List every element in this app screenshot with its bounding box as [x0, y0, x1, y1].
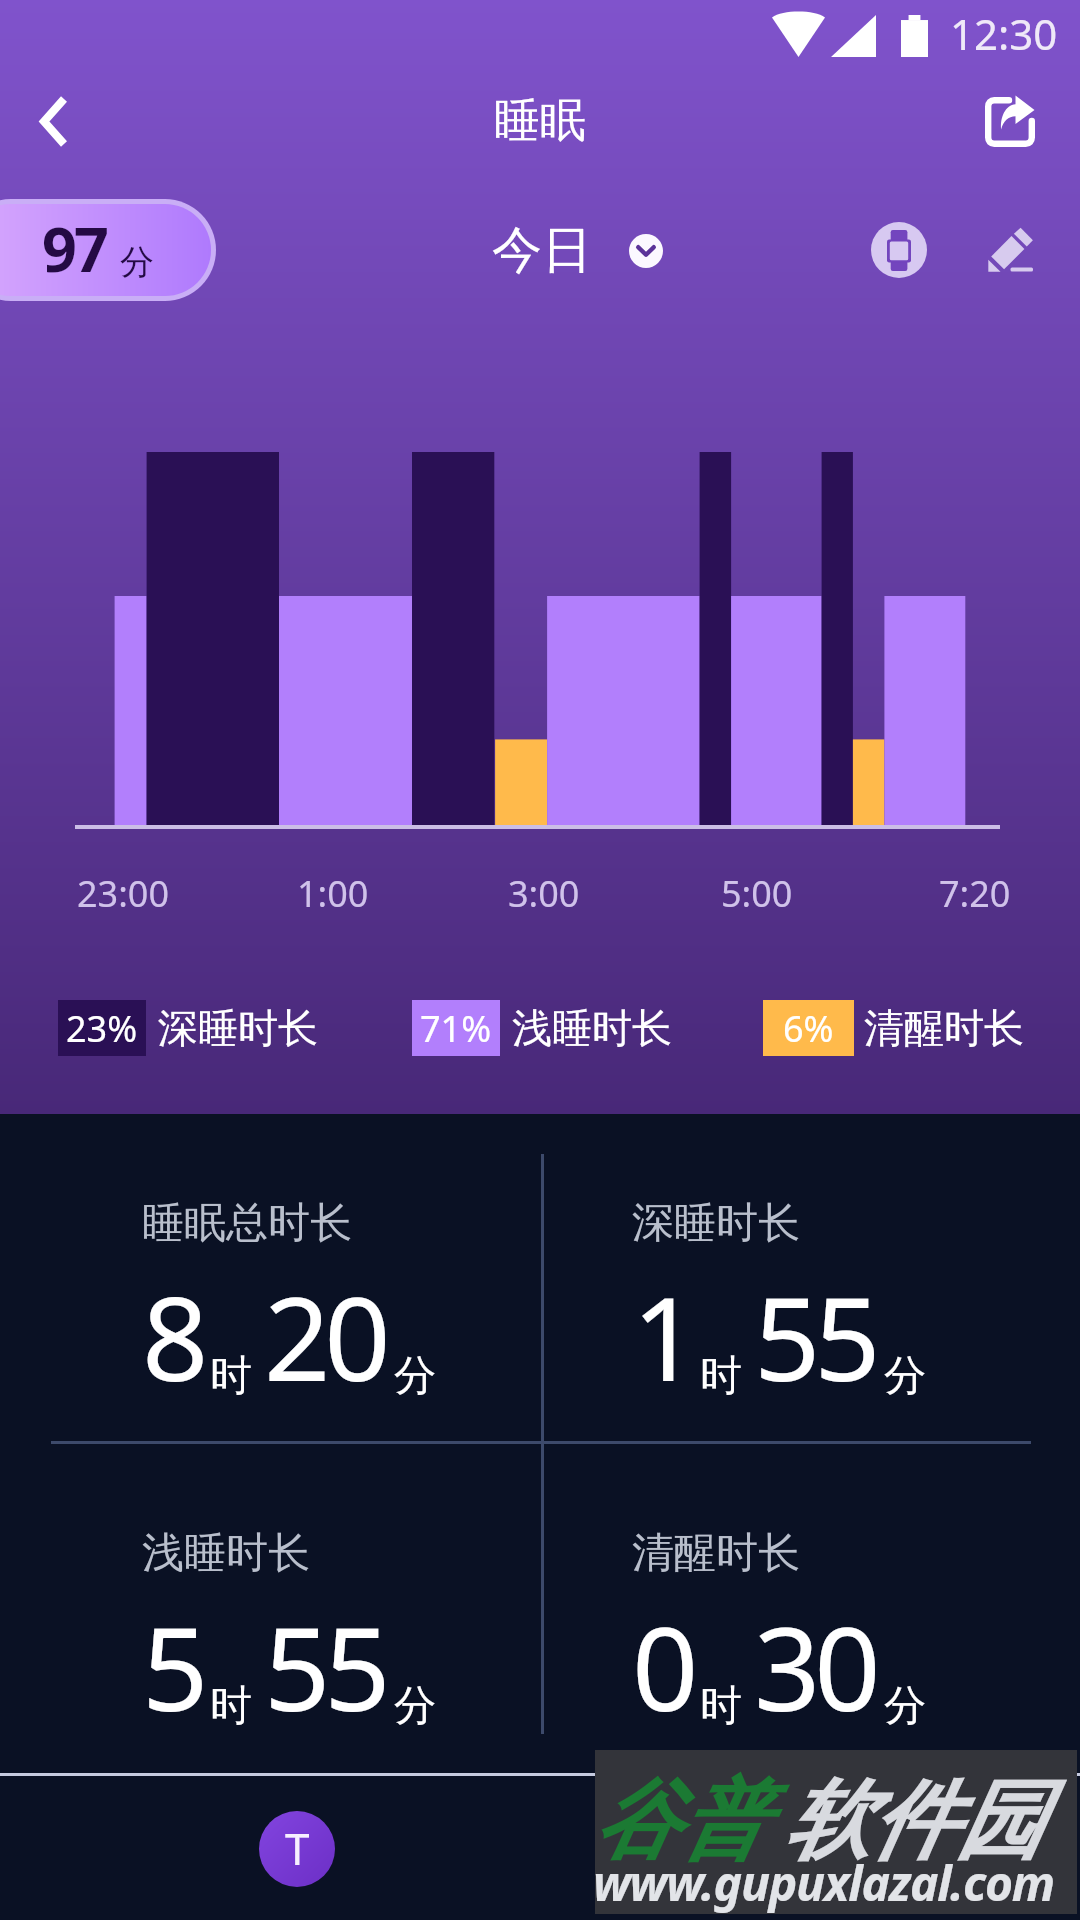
- staticText: 1: [632, 1257, 699, 1415]
- staticText: 软件园: [784, 1767, 1042, 1875]
- button[interactable]: 深睡时长: [632, 1196, 1032, 1486]
- staticText: 23:00: [77, 869, 170, 918]
- staticText: 时: [210, 1680, 252, 1733]
- button[interactable]: 睡眠总时长: [142, 1196, 542, 1486]
- staticText: 71%: [420, 1004, 492, 1053]
- staticText: 浅睡时长: [512, 1003, 672, 1053]
- staticText: www.gupuxlazal.com: [593, 1850, 1055, 1915]
- staticText: 55: [754, 1257, 875, 1415]
- staticText: 8: [142, 1257, 209, 1415]
- staticText: 3:00: [508, 869, 580, 918]
- staticText: 分: [394, 1350, 436, 1403]
- staticText: 55: [264, 1587, 385, 1745]
- staticText: 时: [700, 1350, 742, 1403]
- staticText: 5: [142, 1587, 209, 1745]
- staticText: 深睡时长: [158, 1003, 318, 1053]
- button[interactable]: Edit: [961, 210, 1041, 290]
- staticText: 30: [754, 1587, 875, 1745]
- button[interactable]: Watch: [859, 210, 939, 290]
- staticText: 清醒时长: [864, 1003, 1024, 1053]
- staticText: 深睡时长: [632, 1197, 800, 1250]
- staticText: 分: [394, 1680, 436, 1733]
- staticText: 分: [884, 1350, 926, 1403]
- button[interactable]: 今日: [492, 219, 663, 282]
- staticText: 97: [42, 207, 106, 290]
- button[interactable]: 6%: [763, 988, 1039, 1068]
- staticText: 时: [210, 1350, 252, 1403]
- staticText: 今日: [492, 219, 592, 282]
- button[interactable]: 清醒时长: [632, 1526, 1032, 1816]
- staticText: 睡眠: [494, 92, 586, 150]
- staticText: 谷普: [593, 1767, 765, 1875]
- button[interactable]: 97: [0, 204, 211, 296]
- button[interactable]: 23%: [58, 988, 333, 1068]
- staticText: 6%: [783, 1004, 834, 1053]
- staticText: 分: [120, 241, 154, 284]
- button[interactable]: T: [259, 1811, 335, 1887]
- staticText: 7:20: [939, 869, 1011, 918]
- staticText: 清醒时长: [632, 1527, 800, 1580]
- button[interactable]: Back: [32, 91, 76, 151]
- button[interactable]: 浅睡时长: [142, 1526, 542, 1816]
- staticText: 时: [700, 1680, 742, 1733]
- staticText: 23%: [66, 1004, 138, 1053]
- staticText: 20: [264, 1257, 385, 1415]
- staticText: 1:00: [297, 869, 369, 918]
- button[interactable]: 71%: [412, 988, 687, 1068]
- staticText: 浅睡时长: [142, 1527, 310, 1580]
- staticText: 0: [632, 1587, 699, 1745]
- staticText: 分: [884, 1680, 926, 1733]
- button[interactable]: Share: [975, 87, 1045, 157]
- staticText: 12:30: [950, 5, 1058, 62]
- staticText: 睡眠总时长: [142, 1197, 352, 1250]
- staticText: T: [285, 1818, 310, 1878]
- staticText: 5:00: [721, 869, 793, 918]
